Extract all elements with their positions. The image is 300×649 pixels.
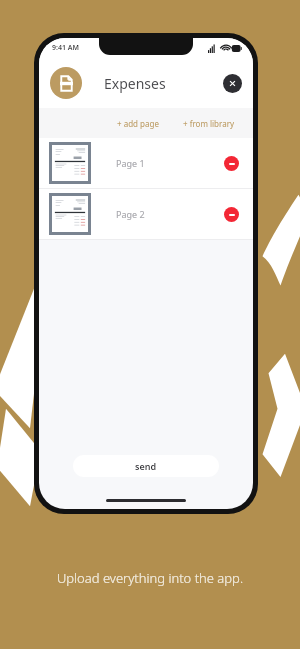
staticText: Page 2 (116, 208, 145, 220)
button[interactable]: Close (223, 74, 242, 93)
staticText: + add page (117, 118, 159, 129)
button[interactable]: + add page (110, 113, 166, 134)
staticText: Expenses (104, 74, 166, 93)
button[interactable]: + from library (176, 113, 242, 134)
button[interactable]: Page 1 (39, 138, 253, 188)
staticText: Page 1 (116, 157, 145, 169)
button[interactable]: Project icon (50, 67, 82, 99)
button[interactable]: Remove Page 1 (224, 156, 239, 171)
staticText: Upload everything into the app. (0, 569, 300, 587)
button[interactable]: send (73, 455, 219, 477)
button[interactable]: Remove Page 2 (224, 207, 239, 222)
staticText: 9:41 AM (52, 43, 79, 53)
button[interactable]: Page 2 (39, 189, 253, 239)
staticText: send (135, 460, 157, 472)
staticText: + from library (183, 118, 235, 129)
